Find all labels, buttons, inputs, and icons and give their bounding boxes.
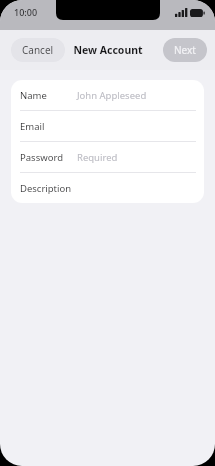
staticText: Password [20,151,63,164]
button[interactable]: Password [11,142,204,173]
staticText: 10:00 [14,6,38,18]
button[interactable]: Name [11,80,204,111]
staticText: Cancel [22,43,54,57]
staticText: John Appleseed [77,89,147,102]
staticText: Next [174,43,196,57]
staticText: Description [20,182,72,195]
button[interactable]: Description [11,173,204,203]
button[interactable]: Cancel [11,38,65,62]
button[interactable]: Next [163,38,207,62]
staticText: Email [20,120,45,133]
button[interactable]: Email [11,111,204,142]
staticText: New Account [73,43,143,57]
staticText: Required [77,151,118,164]
staticText: Name [20,89,47,102]
